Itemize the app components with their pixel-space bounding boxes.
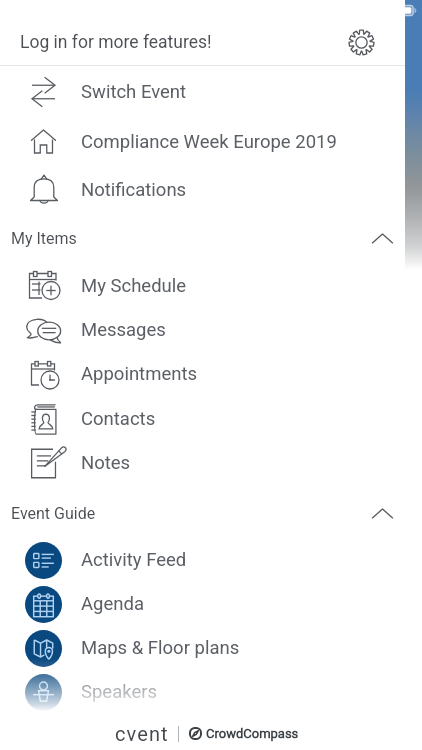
staticText: Log in for more features! [20, 32, 212, 53]
button[interactable]: Agenda [0, 582, 405, 626]
button[interactable]: Log in for more features! [0, 20, 405, 65]
staticText: Contacts [81, 408, 156, 430]
button[interactable]: Activity Feed [0, 538, 405, 582]
staticText: Maps & Floor plans [81, 637, 240, 659]
staticText: Speakers [81, 681, 158, 703]
button[interactable]: Notes [0, 441, 405, 485]
button[interactable]: Speakers [0, 670, 405, 714]
button[interactable]: My Schedule [0, 264, 405, 308]
staticText: cvent [115, 722, 169, 745]
staticText: My Schedule [81, 275, 187, 297]
button[interactable]: Contacts [0, 397, 405, 441]
button[interactable]: Notifications [0, 165, 405, 214]
button[interactable]: Messages [0, 308, 405, 352]
staticText: Switch Event [81, 81, 187, 103]
staticText: Messages [81, 319, 166, 341]
button[interactable]: My Items [0, 216, 405, 260]
staticText: Compliance Week Europe 2019 [81, 131, 337, 153]
button[interactable]: Appointments [0, 352, 405, 396]
button[interactable]: Event Guide [0, 491, 405, 535]
staticText: Agenda [81, 593, 144, 615]
button[interactable]: Settings [339, 20, 384, 65]
button[interactable]: Compliance Week Europe 2019 [0, 117, 405, 166]
staticText: Activity Feed [81, 549, 187, 571]
staticText: Appointments [81, 363, 198, 385]
button[interactable]: Maps & Floor plans [0, 626, 405, 670]
staticText: Event Guide [11, 504, 96, 523]
button[interactable]: Switch Event [0, 67, 405, 116]
staticText: My Items [11, 229, 77, 248]
staticText: CrowdCompass [206, 726, 299, 741]
staticText: Notes [81, 452, 131, 474]
staticText: Notifications [81, 179, 187, 201]
